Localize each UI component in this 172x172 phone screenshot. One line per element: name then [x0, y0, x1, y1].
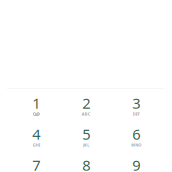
- staticText: GHI: [33, 142, 40, 148]
- button[interactable]: 9: [111, 153, 161, 172]
- staticText: JKL: [83, 142, 89, 148]
- staticText: 4: [32, 124, 40, 144]
- staticText: 6: [132, 124, 140, 144]
- button[interactable]: 7: [11, 153, 61, 172]
- staticText: 1: [32, 93, 40, 113]
- button[interactable]: 3: [111, 91, 161, 122]
- button[interactable]: 1: [11, 91, 61, 122]
- staticText: DEF: [133, 111, 140, 117]
- staticText: 5: [82, 124, 90, 144]
- staticText: 8: [82, 155, 90, 172]
- staticText: 3: [132, 93, 140, 113]
- staticText: 7: [32, 155, 40, 172]
- button[interactable]: 5: [61, 122, 111, 153]
- button[interactable]: 8: [61, 153, 111, 172]
- button[interactable]: 4: [11, 122, 61, 153]
- staticText: 2: [82, 93, 90, 113]
- staticText: 9: [132, 155, 140, 172]
- staticText: ABC: [82, 111, 91, 117]
- staticText: MNO: [131, 142, 141, 148]
- button[interactable]: 6: [111, 122, 161, 153]
- button[interactable]: 2: [61, 91, 111, 122]
